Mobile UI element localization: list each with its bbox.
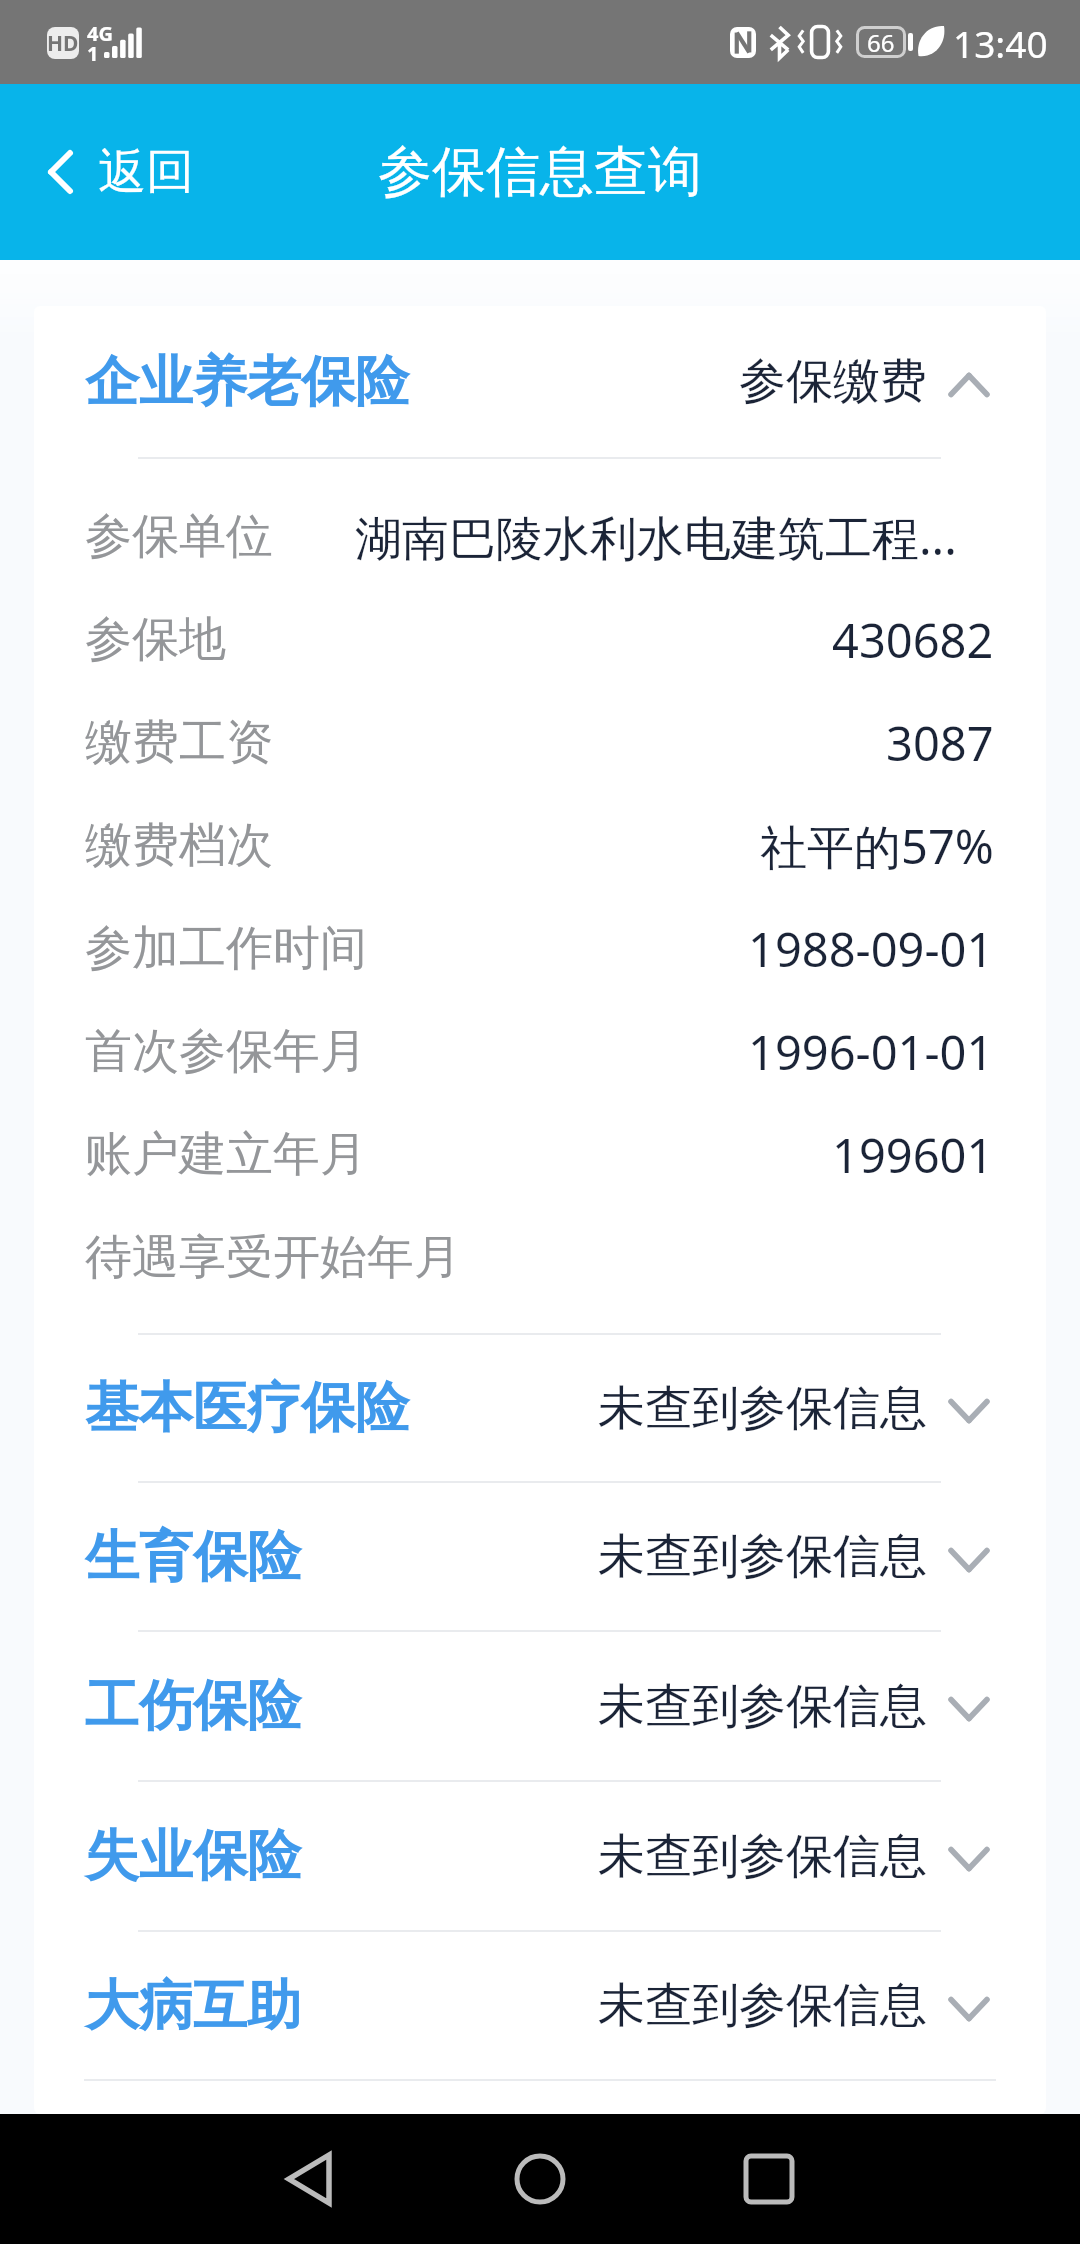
button[interactable]: 生育保险 (34, 1483, 1046, 1630)
staticText: 3087 (886, 711, 994, 775)
staticText: 未查到参保信息 (598, 1527, 927, 1586)
staticText: 返回 (98, 142, 194, 202)
button[interactable]: Home (480, 2119, 600, 2239)
staticText: 基本医疗保险 (85, 1374, 409, 1442)
staticText: 企业养老保险 (85, 348, 409, 416)
staticText: 参保单位 (85, 507, 273, 566)
button[interactable]: 基本医疗保险 (34, 1335, 1046, 1481)
staticText: 参保地 (85, 610, 226, 669)
staticText: 首次参保年月 (85, 1022, 367, 1081)
staticText: 1 (87, 40, 99, 67)
staticText: 湖南巴陵水利水电建筑工程... (355, 505, 957, 569)
staticText: 生育保险 (85, 1523, 301, 1591)
staticText: 未查到参保信息 (598, 1379, 927, 1438)
staticText: 430682 (832, 608, 994, 672)
staticText: 66 (867, 26, 895, 58)
staticText: HD (47, 29, 79, 58)
staticText: 缴费档次 (85, 816, 273, 875)
staticText: 199601 (832, 1123, 994, 1187)
staticText: 缴费工资 (85, 713, 273, 772)
staticText: 大病互助 (85, 1972, 301, 2040)
button[interactable]: 返回 (0, 142, 220, 202)
staticText: 待遇享受开始年月 (85, 1228, 461, 1287)
staticText: 参加工作时间 (85, 919, 367, 978)
button[interactable]: Back (249, 2119, 369, 2239)
button[interactable]: 企业养老保险 (34, 306, 1046, 457)
staticText: 参保缴费 (739, 352, 927, 411)
button[interactable]: 大病互助 (34, 1932, 1046, 2079)
staticText: 1996-01-01 (748, 1020, 994, 1084)
staticText: 13:40 (953, 18, 1048, 68)
staticText: 未查到参保信息 (598, 1827, 927, 1886)
staticText: 1988-09-01 (748, 917, 994, 981)
staticText: 未查到参保信息 (598, 1976, 927, 2035)
staticText: 社平的57% (760, 814, 994, 878)
staticText: 参保信息查询 (378, 138, 702, 206)
button[interactable]: 工伤保险 (34, 1632, 1046, 1780)
staticText: 工伤保险 (85, 1672, 301, 1740)
staticText: 未查到参保信息 (598, 1677, 927, 1736)
staticText: 失业保险 (85, 1822, 301, 1890)
button[interactable]: 失业保险 (34, 1782, 1046, 1930)
staticText: 账户建立年月 (85, 1125, 367, 1184)
button[interactable]: Recents (709, 2119, 829, 2239)
staticText: 4G (87, 20, 113, 47)
